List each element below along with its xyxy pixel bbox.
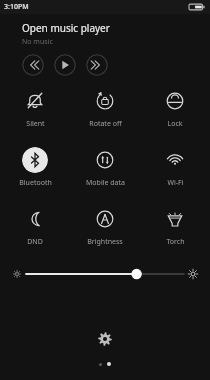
button[interactable]: Play bbox=[54, 54, 76, 76]
staticText: No music bbox=[22, 37, 53, 47]
staticText: Bluetooth bbox=[19, 178, 52, 188]
button[interactable]: Settings bbox=[94, 328, 116, 350]
button[interactable]: DND bbox=[0, 204, 70, 249]
staticText: Open music player bbox=[22, 21, 110, 35]
staticText: Rotate off bbox=[89, 119, 122, 129]
button[interactable]: Brightness bbox=[70, 204, 140, 249]
staticText: Wi-Fi bbox=[167, 178, 184, 188]
button[interactable]: Bluetooth bbox=[0, 145, 70, 190]
staticText: Brightness bbox=[87, 237, 123, 247]
button[interactable]: Brightness slider bbox=[0, 261, 210, 287]
button[interactable]: Silent bbox=[0, 86, 70, 131]
staticText: Silent bbox=[26, 119, 45, 129]
staticText: Mobile data bbox=[86, 178, 125, 188]
staticText: 3:10PM bbox=[4, 2, 29, 12]
staticText: Lock bbox=[167, 119, 183, 129]
button[interactable]: Page 2 bbox=[107, 362, 111, 366]
button[interactable]: Rotate off bbox=[70, 86, 140, 131]
button[interactable]: Previous bbox=[22, 54, 44, 76]
button[interactable]: Torch bbox=[140, 204, 210, 249]
button[interactable]: Page 1 bbox=[99, 363, 102, 366]
staticText: DND bbox=[27, 237, 43, 247]
button[interactable]: Lock bbox=[140, 86, 210, 131]
button[interactable]: Next bbox=[86, 54, 108, 76]
staticText: Torch bbox=[166, 237, 185, 247]
button[interactable]: Wi-Fi bbox=[140, 145, 210, 190]
button[interactable]: Mobile data bbox=[70, 145, 140, 190]
